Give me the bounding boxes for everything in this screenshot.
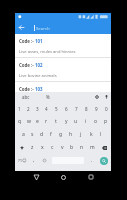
staticText: 6 [65, 106, 68, 112]
button[interactable]: h [66, 128, 76, 141]
button[interactable]: w [24, 115, 33, 128]
button[interactable]: u [71, 115, 81, 128]
staticText: w [27, 118, 31, 125]
button[interactable]: % [37, 92, 59, 102]
staticText: b [70, 144, 74, 151]
button[interactable]: Search [27, 21, 111, 34]
staticText: x [41, 144, 44, 151]
staticText: 4 [45, 106, 48, 112]
button[interactable]: p [101, 115, 111, 128]
staticText: l [100, 131, 102, 138]
staticText: h [69, 131, 73, 138]
staticText: Code :- [19, 86, 35, 92]
staticText: Live bovine animals [19, 73, 57, 79]
button[interactable]: 4 [42, 102, 51, 115]
button[interactable]: c [47, 141, 57, 154]
button[interactable]: 5 [51, 102, 61, 115]
staticText: . [91, 157, 93, 164]
staticText: k [90, 131, 93, 138]
staticText: e [36, 118, 39, 125]
staticText: d [40, 131, 44, 138]
button[interactable]: Voice input [102, 92, 111, 102]
staticText: r [45, 118, 48, 125]
staticText: 9 [95, 106, 98, 112]
button[interactable]: r [42, 115, 51, 128]
staticText: p [104, 118, 108, 125]
button[interactable]: Code :- [15, 58, 111, 81]
button[interactable]: k [86, 128, 96, 141]
button[interactable]: b [67, 141, 77, 154]
staticText: i [85, 118, 87, 125]
staticText: 0 [105, 106, 108, 112]
button[interactable]: m [87, 141, 97, 154]
button[interactable]: j [76, 128, 86, 141]
button[interactable]: o [91, 115, 101, 128]
button[interactable]: 7 [71, 102, 81, 115]
staticText: ?1☺ [18, 158, 27, 164]
staticText: Code :- [19, 38, 35, 44]
button[interactable]: q [15, 115, 24, 128]
button[interactable]: v [57, 141, 67, 154]
staticText: 8 [85, 106, 88, 112]
staticText: 7 [75, 106, 78, 112]
button[interactable]: Settings [91, 92, 102, 102]
staticText: m [90, 144, 95, 151]
button[interactable]: ?1☺ [15, 154, 29, 167]
staticText: t [55, 118, 57, 125]
button[interactable]: s [28, 128, 37, 141]
button[interactable]: 3 [33, 102, 42, 115]
staticText: c [51, 144, 54, 151]
button[interactable]: Shift [15, 141, 28, 154]
button[interactable]: Back [25, 171, 48, 183]
staticText: 3 [36, 106, 39, 112]
button[interactable]: 6 [61, 102, 71, 115]
button[interactable]: Backspace [97, 141, 111, 154]
button[interactable]: t [51, 115, 61, 128]
button[interactable]: 0 [101, 102, 111, 115]
button[interactable]: d [37, 128, 46, 141]
button[interactable]: e [33, 115, 42, 128]
button[interactable]: 1 [15, 102, 24, 115]
staticText: a [22, 131, 25, 138]
button[interactable]: g [56, 128, 66, 141]
button[interactable]: Back [15, 21, 27, 34]
staticText: 102 [35, 62, 43, 68]
button[interactable]: Search [97, 154, 111, 167]
staticText: u [74, 118, 78, 125]
button[interactable]: Code :- [15, 82, 111, 92]
button[interactable]: Code :- [15, 34, 111, 57]
staticText: q [18, 118, 22, 125]
staticText: z [31, 144, 34, 151]
button[interactable]: x [37, 141, 47, 154]
button[interactable]: Emoji [39, 154, 49, 167]
button[interactable]: abc [15, 92, 37, 102]
staticText: j [80, 131, 82, 138]
button[interactable]: 8 [81, 102, 91, 115]
button[interactable]: Recents [79, 171, 102, 183]
staticText: g [59, 131, 63, 138]
button[interactable]: f [46, 128, 56, 141]
button[interactable]: 2 [24, 102, 33, 115]
staticText: 1 [18, 106, 21, 112]
staticText: % [46, 94, 50, 100]
staticText: s [31, 131, 34, 138]
button[interactable]: y [61, 115, 71, 128]
button[interactable]: Home [52, 171, 75, 183]
button[interactable]: . [87, 154, 97, 167]
staticText: f [50, 131, 52, 138]
button[interactable]: n [77, 141, 87, 154]
staticText: Search [36, 25, 50, 31]
button[interactable]: a [19, 128, 28, 141]
staticText: abc [22, 94, 30, 100]
staticText: 2 [27, 106, 30, 112]
staticText: 101 [35, 38, 43, 44]
staticText: 5 [55, 106, 58, 112]
button[interactable]: z [28, 141, 37, 154]
button[interactable]: 9 [91, 102, 101, 115]
staticText: Code :- [19, 62, 35, 68]
button[interactable]: i [81, 115, 91, 128]
staticText: Live asses, mules and hinnies [19, 49, 76, 55]
button[interactable]: l [96, 128, 106, 141]
button[interactable]: , [29, 154, 39, 167]
